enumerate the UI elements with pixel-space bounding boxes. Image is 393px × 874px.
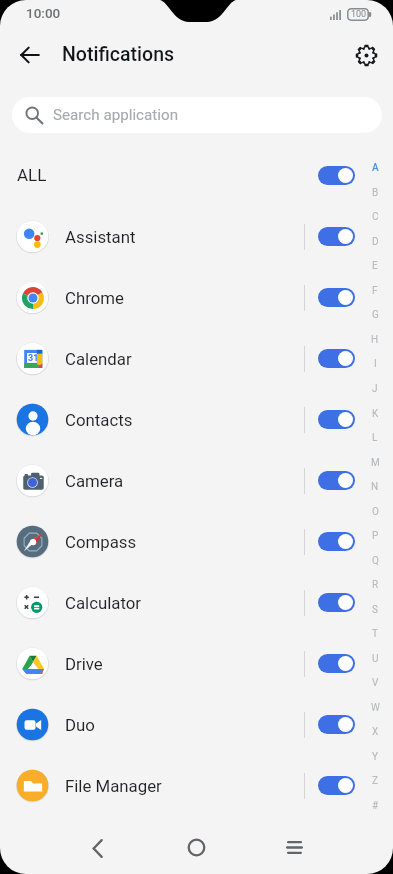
staticText: A xyxy=(372,162,379,174)
staticText: P xyxy=(372,530,379,542)
staticText: ALL xyxy=(17,165,47,185)
staticText: # xyxy=(372,800,379,812)
button[interactable]: Toggle xyxy=(318,227,355,246)
button[interactable]: Back xyxy=(75,826,120,871)
button[interactable]: Toggle xyxy=(318,593,355,612)
staticText: Y xyxy=(372,751,379,763)
staticText: M xyxy=(371,457,380,469)
staticText: 31 xyxy=(28,353,39,364)
staticText: U xyxy=(372,653,379,665)
staticText: H xyxy=(371,334,379,346)
button[interactable]: ALL xyxy=(0,153,393,197)
button[interactable]: Home xyxy=(174,825,219,870)
button[interactable]: Contacts xyxy=(0,389,393,450)
staticText: I xyxy=(374,358,377,370)
staticText: J xyxy=(372,383,378,395)
button[interactable]: Search application xyxy=(12,97,382,133)
staticText: Calculator xyxy=(65,593,304,613)
staticText: Z xyxy=(372,775,378,787)
staticText: Duo xyxy=(65,715,304,735)
button[interactable]: Toggle xyxy=(318,288,355,307)
staticText: B xyxy=(372,187,379,199)
staticText: X xyxy=(372,726,379,738)
button[interactable]: Toggle xyxy=(318,654,355,673)
staticText: Calendar xyxy=(65,349,304,369)
button[interactable]: File Manager xyxy=(0,755,393,816)
staticText: Q xyxy=(372,555,379,567)
staticText: Notifications xyxy=(62,43,175,66)
staticText: C xyxy=(372,211,379,223)
staticText: G xyxy=(372,309,379,321)
button[interactable]: Assistant xyxy=(0,206,393,267)
button[interactable]: Toggle xyxy=(318,471,355,490)
staticText: File Manager xyxy=(65,776,304,796)
staticText: K xyxy=(372,408,379,420)
staticText: R xyxy=(372,579,379,591)
button[interactable]: Toggle xyxy=(318,349,355,368)
staticText: T xyxy=(372,628,378,640)
staticText: 100 xyxy=(351,9,367,20)
staticText: D xyxy=(372,236,379,248)
staticText: N xyxy=(371,481,379,493)
button[interactable]: Recent apps xyxy=(272,825,317,870)
button[interactable]: 31 xyxy=(0,328,393,389)
button[interactable]: Toggle xyxy=(318,776,355,795)
staticText: Search application xyxy=(53,106,179,124)
button[interactable]: Duo xyxy=(0,694,393,755)
staticText: O xyxy=(372,506,379,518)
staticText: V xyxy=(372,677,379,689)
staticText: L xyxy=(372,432,378,444)
button[interactable]: Toggle xyxy=(318,532,355,551)
button[interactable]: Calculator xyxy=(0,572,393,633)
staticText: Contacts xyxy=(65,410,304,430)
staticText: Compass xyxy=(65,532,304,552)
staticText: Camera xyxy=(65,471,304,491)
button[interactable]: Toggle xyxy=(318,715,355,734)
staticText: F xyxy=(372,285,378,297)
staticText: Chrome xyxy=(65,288,304,308)
button[interactable]: Compass xyxy=(0,511,393,572)
button[interactable]: Toggle xyxy=(318,410,355,429)
button[interactable]: Chrome xyxy=(0,267,393,328)
button[interactable]: Drive xyxy=(0,633,393,694)
staticText: 10:00 xyxy=(26,5,61,21)
button[interactable]: Back xyxy=(10,35,50,75)
staticText: E xyxy=(372,260,378,272)
button[interactable]: Toggle xyxy=(318,166,355,185)
staticText: Drive xyxy=(65,654,304,674)
button[interactable]: Settings xyxy=(346,35,386,75)
staticText: S xyxy=(372,604,378,616)
button[interactable]: Camera xyxy=(0,450,393,511)
staticText: W xyxy=(371,702,380,714)
staticText: Assistant xyxy=(65,227,304,247)
